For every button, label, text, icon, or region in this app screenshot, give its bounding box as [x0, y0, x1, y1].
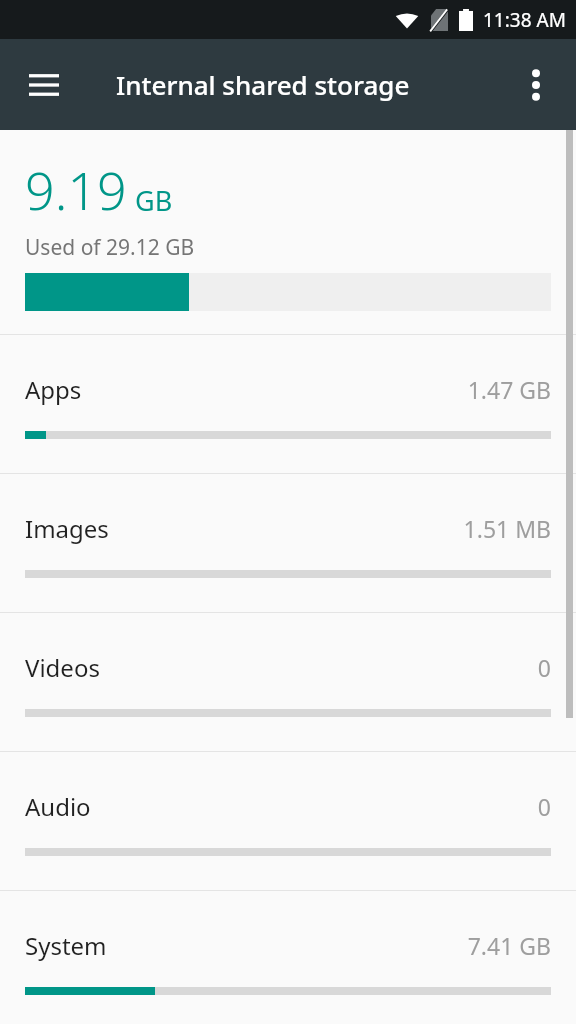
staticText: 0	[537, 652, 551, 683]
staticText: Internal shared storage	[116, 67, 410, 102]
staticText: Images	[25, 512, 109, 545]
staticText: 11:38 AM	[483, 7, 566, 33]
staticText: Used of 29.12 GB	[25, 233, 195, 262]
staticText: 0	[537, 791, 551, 822]
staticText: 9.19	[25, 154, 127, 225]
staticText: System	[25, 929, 107, 962]
button[interactable]: Apps	[0, 335, 576, 473]
staticText: 1.51 MB	[463, 513, 551, 544]
staticText: Videos	[25, 651, 100, 684]
button[interactable]: 9.19	[0, 130, 576, 334]
button[interactable]: Videos	[0, 613, 576, 751]
staticText: 7.41 GB	[467, 930, 551, 961]
button[interactable]: More options	[504, 53, 568, 117]
button[interactable]: Images	[0, 474, 576, 612]
button[interactable]: System	[0, 891, 576, 1024]
button[interactable]: Audio	[0, 752, 576, 890]
staticText: Audio	[25, 790, 91, 823]
staticText: Apps	[25, 373, 82, 406]
staticText: GB	[135, 182, 173, 219]
button[interactable]: Open navigation menu	[8, 49, 80, 121]
staticText: 1.47 GB	[467, 374, 551, 405]
